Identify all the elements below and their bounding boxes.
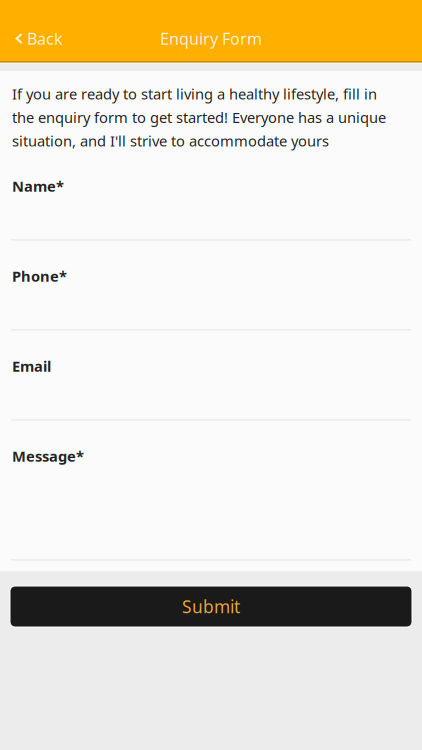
staticText: Phone* — [12, 266, 67, 286]
staticText: Back — [27, 28, 63, 49]
staticText: Email — [12, 356, 51, 376]
button[interactable]: Submit — [10, 586, 412, 627]
button[interactable]: Email — [0, 330, 422, 420]
button[interactable]: Message* — [0, 420, 422, 560]
staticText: Name* — [12, 176, 64, 196]
button[interactable]: Name* — [0, 150, 422, 240]
staticText: Submit — [182, 595, 240, 618]
button[interactable]: Back — [0, 0, 73, 60]
staticText: If you are ready to start living a healt… — [12, 84, 386, 150]
button[interactable]: Phone* — [0, 240, 422, 330]
staticText: Enquiry Form — [160, 28, 262, 49]
staticText: Message* — [12, 446, 84, 466]
